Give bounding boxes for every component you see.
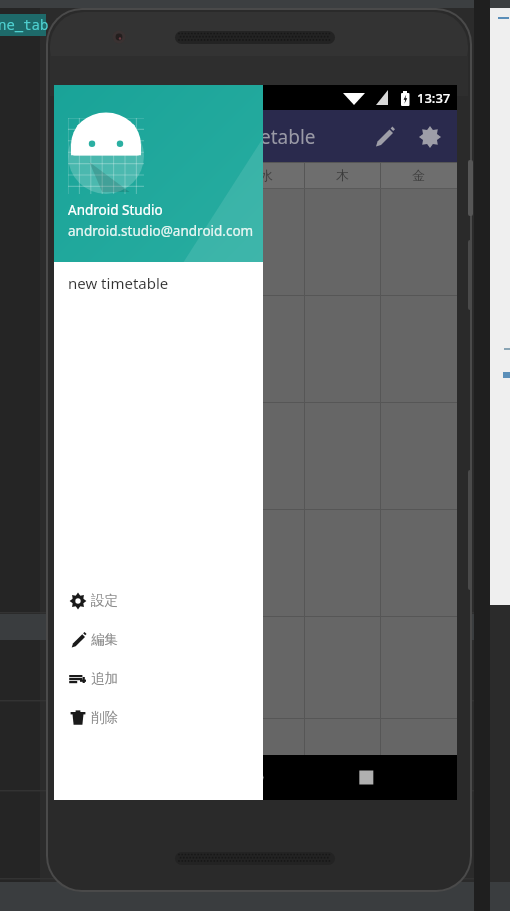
staticText: Android Studio xyxy=(68,201,163,219)
button[interactable]: Edit xyxy=(370,123,398,151)
staticText: android.studio@android.com xyxy=(68,222,254,240)
staticText: 13:37 xyxy=(417,89,451,107)
button[interactable]: 設定 xyxy=(54,581,263,620)
button[interactable]: Android Studio xyxy=(54,85,263,262)
staticText: 設定 xyxy=(91,592,118,609)
button[interactable]: 編集 xyxy=(54,620,263,659)
button[interactable]: 削除 xyxy=(54,698,263,737)
staticText: etable xyxy=(260,124,316,150)
staticText: 木 xyxy=(336,167,349,183)
button[interactable]: Settings xyxy=(416,123,444,151)
staticText: ne_tab xyxy=(0,15,49,34)
staticText: 水 xyxy=(260,167,273,183)
staticText: 編集 xyxy=(91,631,118,648)
staticText: 削除 xyxy=(91,709,118,726)
staticText: 金 xyxy=(412,167,425,183)
staticText: new timetable xyxy=(68,273,169,293)
staticText: 追加 xyxy=(91,670,118,687)
button[interactable]: new timetable xyxy=(54,262,263,304)
button[interactable]: 追加 xyxy=(54,659,263,698)
